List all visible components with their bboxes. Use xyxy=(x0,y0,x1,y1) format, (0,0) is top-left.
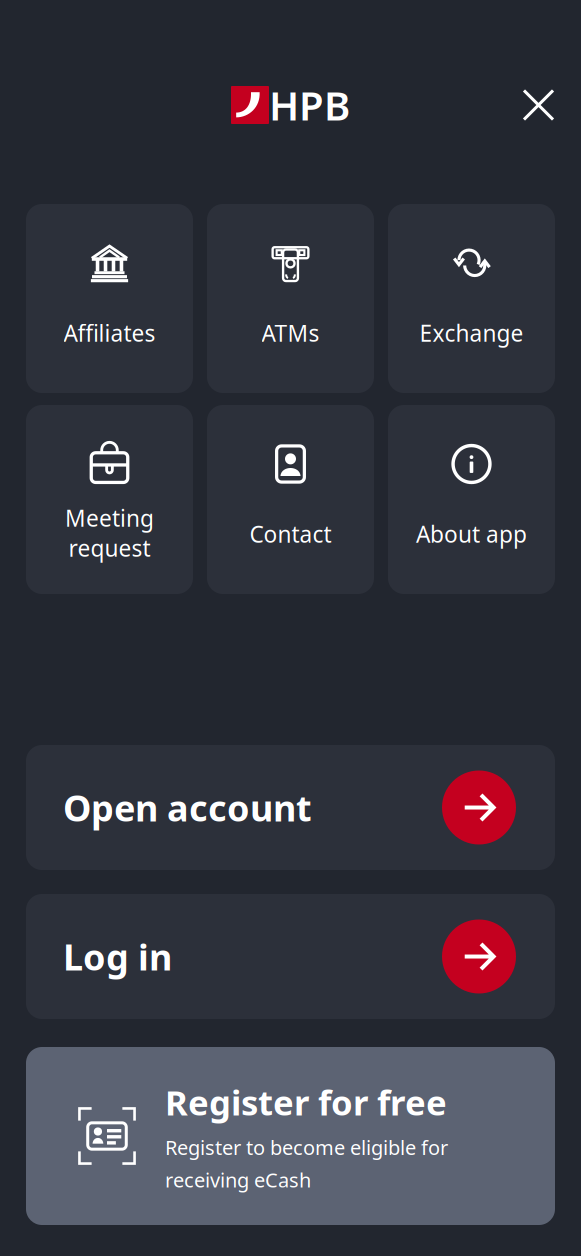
staticText: Contact xyxy=(249,519,331,549)
staticText: ATMs xyxy=(261,318,319,348)
staticText: Log in xyxy=(63,933,172,980)
button[interactable]: Meeting xyxy=(26,405,193,594)
button[interactable]: ATMs xyxy=(207,204,374,393)
button[interactable]: Open account xyxy=(26,745,555,870)
button[interactable]: Log in xyxy=(26,894,555,1019)
staticText: Affiliates xyxy=(63,318,155,348)
staticText: About app xyxy=(416,519,527,549)
staticText: Exchange xyxy=(419,318,523,348)
staticText: Register to become eligible for xyxy=(165,1134,448,1161)
staticText: Register for free xyxy=(165,1079,447,1125)
staticText: HPB xyxy=(269,78,350,131)
staticText: receiving eCash xyxy=(165,1166,311,1193)
button[interactable]: Contact xyxy=(207,405,374,594)
staticText: Open account xyxy=(63,784,312,831)
staticText: Meeting xyxy=(65,503,154,533)
button[interactable]: Register for free xyxy=(26,1047,555,1225)
button[interactable]: Affiliates xyxy=(26,204,193,393)
button[interactable]: Exchange xyxy=(388,204,555,393)
staticText: request xyxy=(68,533,150,563)
button[interactable]: About app xyxy=(388,405,555,594)
button[interactable]: Close xyxy=(498,76,581,133)
